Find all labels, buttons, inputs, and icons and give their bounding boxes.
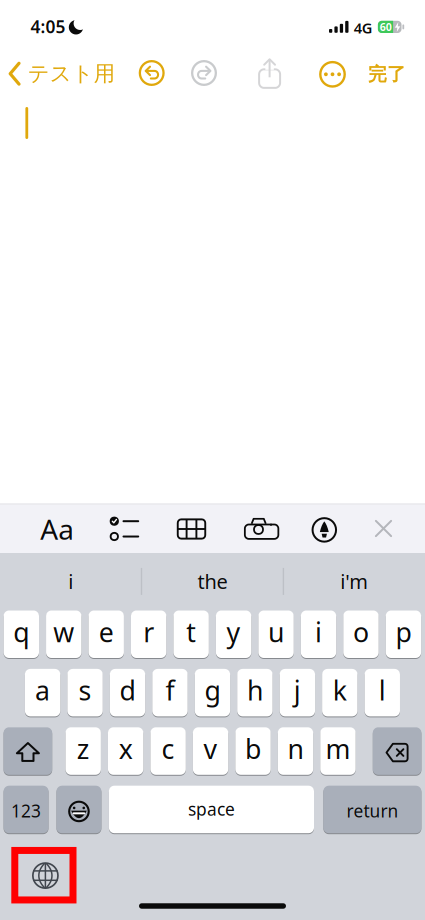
button[interactable]: Next keyboard (11, 847, 76, 903)
button[interactable]: p (386, 610, 421, 658)
staticText: n (287, 731, 303, 766)
button[interactable]: t (173, 610, 209, 658)
staticText: w (53, 614, 74, 649)
button[interactable]: j (280, 668, 315, 717)
staticText: テスト用 (28, 61, 115, 87)
button[interactable]: d (110, 668, 145, 717)
staticText: i'm (340, 568, 368, 595)
staticText: 4:05 (30, 15, 65, 38)
button[interactable]: Undo (139, 60, 165, 86)
button[interactable]: f (152, 668, 188, 717)
staticText: e (99, 614, 114, 649)
staticText: i (315, 614, 322, 649)
button[interactable]: Delete (373, 727, 421, 775)
staticText: 123 (11, 799, 41, 822)
staticText: g (204, 672, 220, 708)
staticText: r (143, 614, 154, 649)
button[interactable]: テスト用 (8, 54, 118, 94)
staticText: h (247, 672, 263, 708)
staticText: d (119, 672, 135, 708)
staticText: m (325, 731, 350, 766)
button[interactable]: Camera (244, 517, 280, 541)
button[interactable]: v (193, 727, 228, 775)
staticText: return (346, 799, 398, 822)
button[interactable]: z (65, 727, 101, 775)
button[interactable]: i (6, 561, 136, 601)
staticText: k (333, 672, 347, 708)
button[interactable]: y (216, 610, 251, 658)
button[interactable]: Checklist (109, 516, 139, 542)
button[interactable]: Table (177, 518, 206, 540)
button[interactable]: More (319, 61, 346, 88)
staticText: q (13, 614, 29, 649)
button[interactable]: n (278, 727, 313, 775)
staticText: s (79, 672, 92, 708)
button[interactable]: 完了 (368, 63, 406, 86)
staticText: o (353, 614, 369, 649)
staticText: u (268, 614, 284, 649)
button[interactable]: b (235, 727, 271, 775)
button[interactable]: Emoji (56, 785, 101, 834)
button[interactable]: Share (258, 57, 282, 89)
staticText: 4G (354, 18, 373, 37)
button[interactable]: Shift (4, 727, 52, 775)
button[interactable]: Close (375, 520, 392, 537)
button[interactable]: k (322, 668, 357, 717)
button[interactable]: g (195, 668, 230, 717)
staticText: y (227, 614, 241, 649)
staticText: v (204, 731, 218, 766)
staticText: i (68, 568, 73, 595)
staticText: the (197, 568, 227, 595)
staticText: b (245, 731, 261, 766)
button[interactable]: space (109, 785, 314, 834)
button[interactable]: w (46, 610, 81, 658)
button[interactable]: l (365, 668, 400, 717)
button[interactable]: q (4, 610, 39, 658)
button[interactable]: 123 (4, 785, 48, 834)
staticText: x (119, 731, 133, 766)
button[interactable]: m (320, 727, 356, 775)
button[interactable]: i'm (289, 561, 419, 601)
staticText: z (77, 731, 90, 766)
button[interactable]: Markup (312, 517, 337, 543)
button[interactable]: x (108, 727, 143, 775)
button[interactable]: e (88, 610, 124, 658)
staticText: c (162, 731, 175, 766)
button[interactable]: c (150, 727, 186, 775)
button[interactable]: Format (40, 510, 74, 548)
staticText: 60 (380, 20, 392, 34)
staticText: j (294, 672, 301, 708)
button[interactable]: s (67, 668, 103, 717)
button[interactable]: return (323, 785, 421, 834)
staticText: p (395, 614, 411, 649)
button[interactable]: a (25, 668, 60, 717)
staticText: a (35, 672, 50, 708)
button[interactable]: r (131, 610, 166, 658)
button[interactable]: the (147, 561, 277, 601)
staticText: f (165, 672, 174, 708)
staticText: t (186, 614, 196, 649)
button[interactable]: i (301, 610, 336, 658)
staticText: 完了 (368, 63, 406, 86)
button[interactable]: Redo (191, 60, 217, 86)
staticText: Aa (40, 510, 74, 548)
button[interactable]: u (258, 610, 294, 658)
button[interactable]: o (343, 610, 379, 658)
staticText: space (188, 797, 235, 820)
button[interactable]: h (237, 668, 273, 717)
staticText: l (379, 672, 386, 708)
